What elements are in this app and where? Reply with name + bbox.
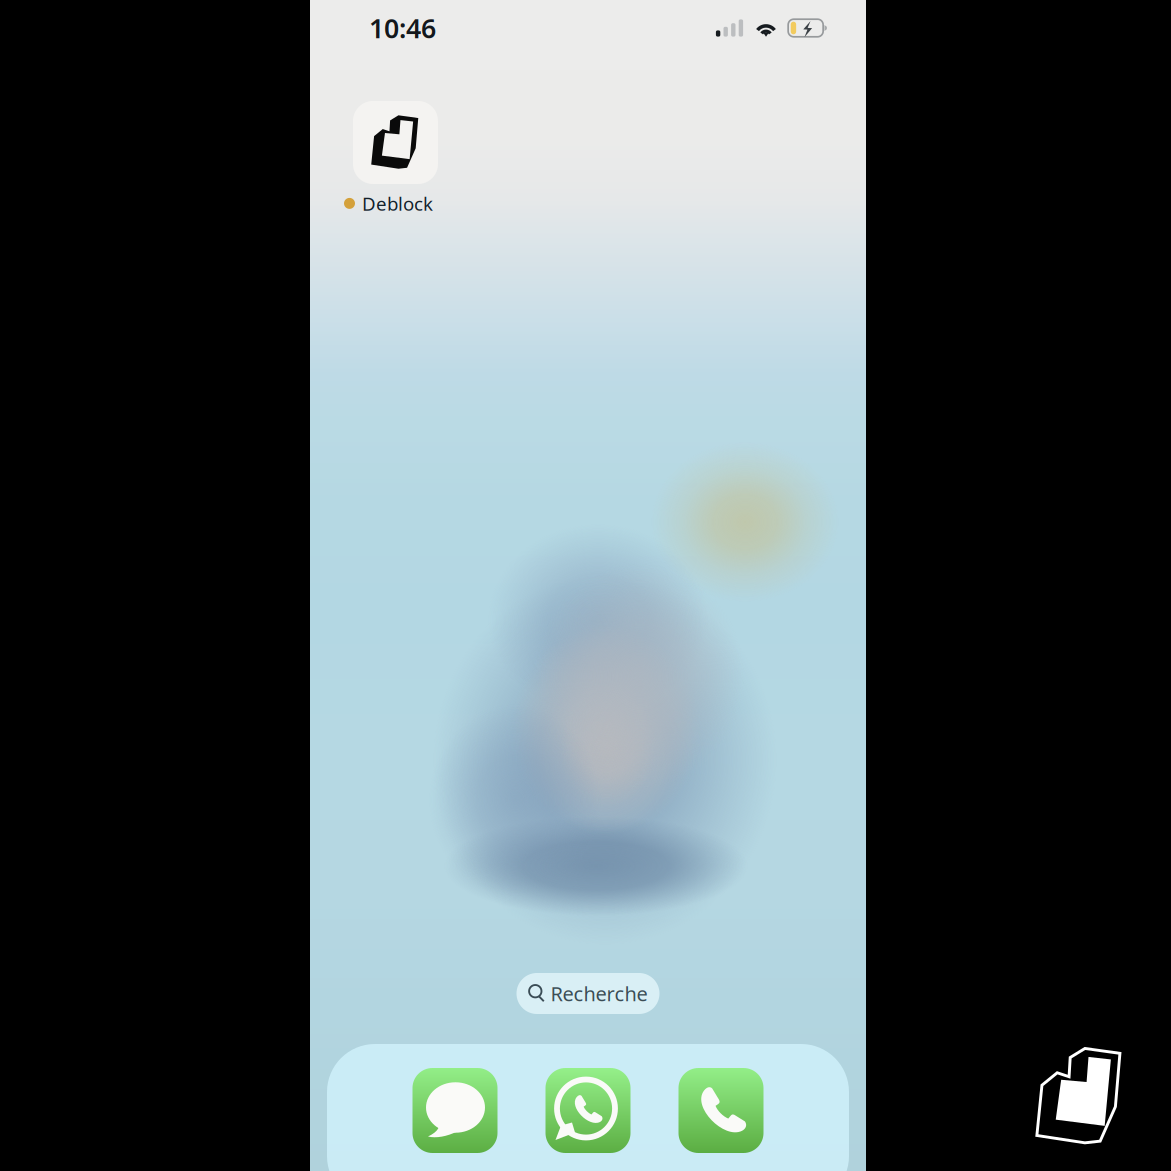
button[interactable]: Messages [412,1068,497,1153]
button[interactable]: Recherche [516,973,659,1014]
button[interactable]: WhatsApp [545,1068,630,1153]
staticText: Deblock [362,191,433,216]
button[interactable]: Deblock [353,101,438,216]
staticText: 10:46 [369,10,436,46]
staticText: Recherche [550,980,647,1007]
button[interactable]: Téléphone [678,1068,763,1153]
